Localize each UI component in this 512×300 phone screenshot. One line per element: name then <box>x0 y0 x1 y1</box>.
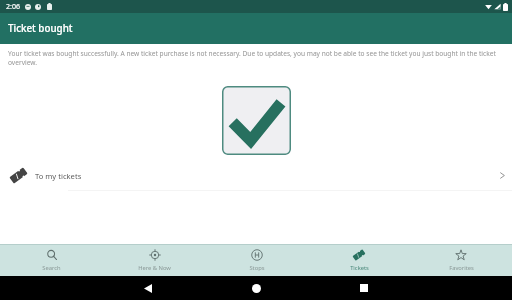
staticText: Ticket bought <box>8 22 73 35</box>
staticText: Tickets <box>350 264 369 272</box>
staticText: To my tickets <box>35 171 82 181</box>
button[interactable]: Recent apps <box>310 276 418 300</box>
staticText: Favorites <box>449 264 474 272</box>
button[interactable]: Tickets <box>308 244 410 276</box>
button[interactable]: Here & Now <box>103 244 206 276</box>
button[interactable]: To my tickets <box>0 161 512 191</box>
staticText: Search <box>42 264 61 272</box>
button[interactable]: Back <box>94 276 202 300</box>
button[interactable]: Stops <box>206 244 308 276</box>
button[interactable]: Search <box>0 244 103 276</box>
staticText: Stops <box>249 264 265 272</box>
staticText: Here & Now <box>138 264 171 272</box>
staticText: 2:06 <box>6 2 20 12</box>
button[interactable]: Favorites <box>410 244 512 276</box>
staticText: Your ticket was bought successfully. A n… <box>8 49 504 67</box>
button[interactable]: Home <box>202 276 310 300</box>
